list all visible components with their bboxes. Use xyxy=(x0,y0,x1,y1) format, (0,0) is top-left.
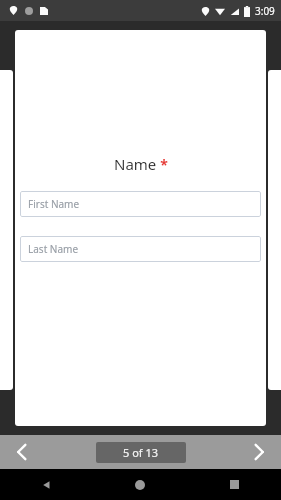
staticText: 5 of 13 xyxy=(123,445,159,460)
button[interactable]: First Name xyxy=(20,191,261,217)
staticText: First Name xyxy=(28,197,80,211)
button[interactable]: Home xyxy=(93,469,187,500)
button[interactable]: 5 of 13 xyxy=(96,442,186,463)
button[interactable]: Back xyxy=(0,469,93,500)
button[interactable] xyxy=(0,70,13,390)
button[interactable]: Last Name xyxy=(20,236,261,262)
staticText: 3:09 xyxy=(255,4,275,18)
staticText: Last Name xyxy=(28,242,79,256)
button[interactable] xyxy=(268,70,281,390)
button[interactable]: Recent apps xyxy=(187,469,281,500)
staticText: Name * xyxy=(114,154,168,174)
button[interactable]: Previous xyxy=(0,435,44,469)
button[interactable]: Next xyxy=(237,435,281,469)
